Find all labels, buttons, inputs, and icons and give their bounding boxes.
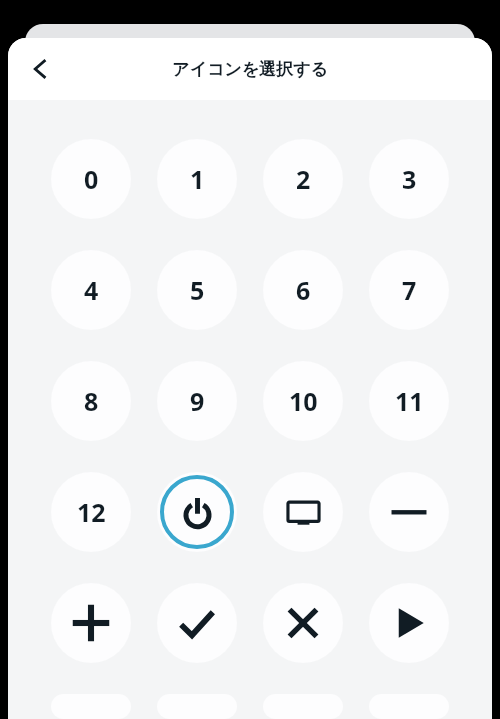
staticText: アイコンを選択する bbox=[172, 59, 328, 80]
staticText: 7 bbox=[402, 273, 417, 307]
button[interactable]: Plus bbox=[51, 583, 131, 663]
button[interactable]: TV bbox=[263, 472, 343, 552]
staticText: 11 bbox=[395, 384, 424, 418]
button[interactable]: 2 bbox=[263, 139, 343, 219]
button[interactable]: 5 bbox=[157, 250, 237, 330]
button[interactable]: Close bbox=[263, 583, 343, 663]
button[interactable]: Back bbox=[16, 45, 64, 93]
button[interactable]: Check bbox=[157, 583, 237, 663]
staticText: 12 bbox=[77, 495, 106, 529]
button[interactable]: 12 bbox=[51, 472, 131, 552]
button[interactable]: 1 bbox=[157, 139, 237, 219]
button[interactable]: 9 bbox=[157, 361, 237, 441]
button[interactable]: 8 bbox=[51, 361, 131, 441]
button[interactable]: Power bbox=[157, 472, 237, 552]
staticText: 1 bbox=[190, 162, 205, 196]
staticText: 2 bbox=[296, 162, 311, 196]
button[interactable]: Play bbox=[369, 583, 449, 663]
button[interactable]: Minus bbox=[369, 472, 449, 552]
button[interactable]: 4 bbox=[51, 250, 131, 330]
button[interactable]: 0 bbox=[51, 139, 131, 219]
button[interactable]: 6 bbox=[263, 250, 343, 330]
staticText: 8 bbox=[84, 384, 99, 418]
button[interactable]: 11 bbox=[369, 361, 449, 441]
staticText: 9 bbox=[190, 384, 205, 418]
button[interactable]: 7 bbox=[369, 250, 449, 330]
staticText: 3 bbox=[402, 162, 417, 196]
staticText: 4 bbox=[84, 273, 99, 307]
staticText: 10 bbox=[289, 384, 318, 418]
staticText: 5 bbox=[190, 273, 205, 307]
button[interactable]: 3 bbox=[369, 139, 449, 219]
staticText: 0 bbox=[84, 162, 99, 196]
staticText: 6 bbox=[296, 273, 311, 307]
button[interactable]: 10 bbox=[263, 361, 343, 441]
